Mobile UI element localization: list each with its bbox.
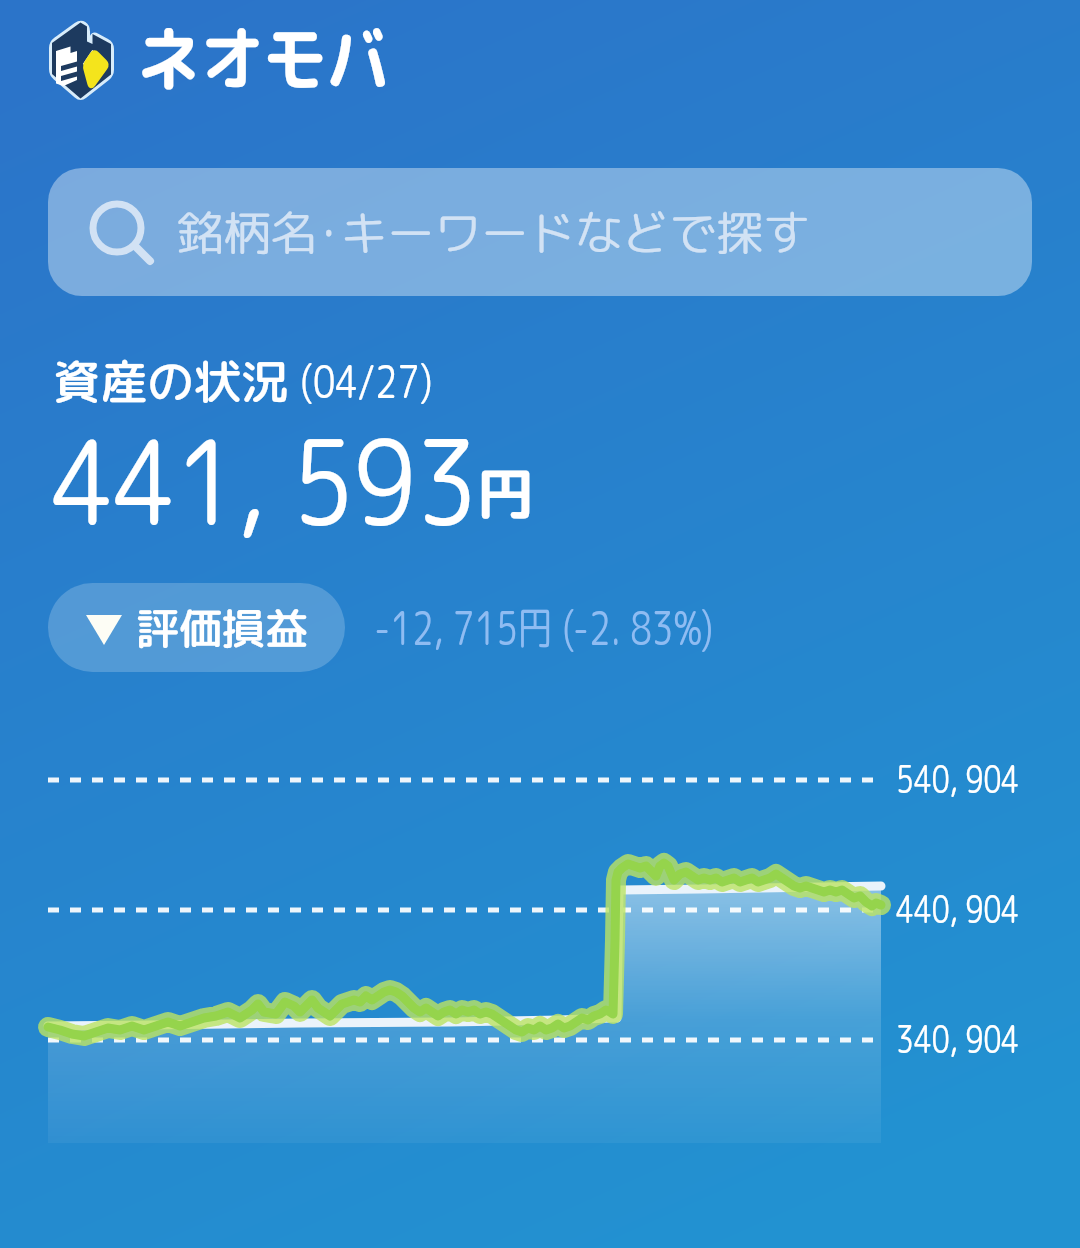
staticText: 540, 904 (896, 753, 1019, 805)
staticText: 資産の状況 (53, 348, 288, 414)
staticText: 円 (477, 454, 534, 534)
staticText: 評価損益 (136, 598, 308, 658)
staticText: 銘柄名･キーワードなどで探す (176, 199, 811, 265)
button[interactable]: 銘柄名･キーワードなどで探す (48, 168, 1032, 296)
staticText: 441, 593 (52, 400, 479, 562)
staticText: -12, 715円 (-2. 83%) (374, 596, 714, 660)
staticText: 340, 904 (896, 1013, 1019, 1065)
staticText: ネオモバ (137, 9, 391, 108)
button[interactable]: 評価損益 (48, 583, 345, 672)
staticText: (04/27) (300, 350, 433, 413)
staticText: 440, 904 (896, 883, 1019, 935)
